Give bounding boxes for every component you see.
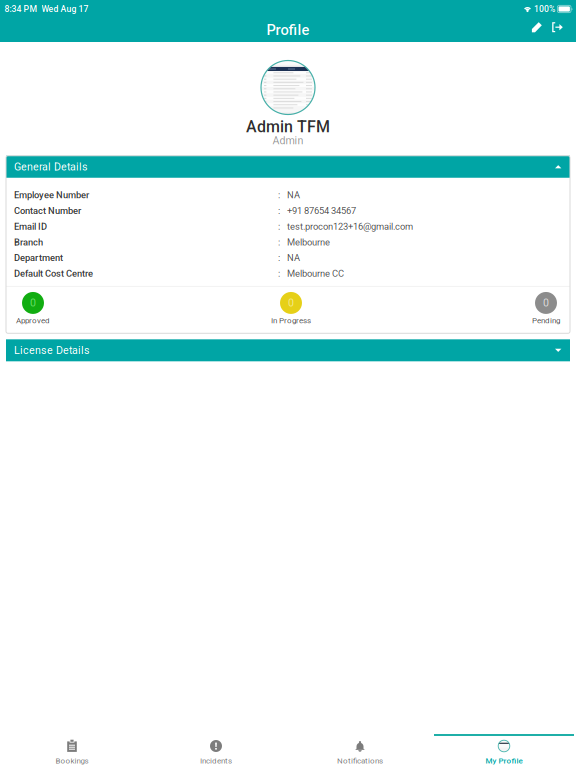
staticText: : [278, 268, 280, 279]
staticText: Notifications [337, 756, 383, 765]
staticText: NA [287, 252, 300, 263]
staticText: 100% [534, 4, 555, 14]
staticText: Melbourne [287, 237, 330, 248]
staticText: Default Cost Centre [14, 268, 93, 279]
staticText: : [278, 190, 280, 200]
staticText: Contact Number [14, 205, 81, 216]
staticText: In Progress [271, 316, 311, 325]
staticText: Branch [14, 237, 43, 248]
staticText: 8:34 PM [4, 4, 37, 14]
staticText: Admin TFM [246, 117, 330, 136]
staticText: : [278, 237, 280, 248]
button[interactable]: Bookings [0, 734, 144, 768]
button[interactable]: License Details [6, 339, 570, 361]
button[interactable]: Notifications [288, 734, 432, 768]
staticText: Incidents [200, 756, 232, 765]
staticText: Wed Aug 17 [41, 4, 88, 14]
button[interactable]: Log out [552, 22, 563, 33]
button[interactable]: General Details [6, 156, 570, 178]
staticText: Approved [16, 316, 50, 325]
staticText: : [278, 205, 280, 216]
staticText: : [278, 252, 280, 263]
staticText: 0 [543, 297, 549, 309]
staticText: test.procon123+16@gmail.com [287, 221, 413, 232]
button[interactable]: My Profile [432, 734, 576, 768]
staticText: Email ID [14, 221, 47, 232]
staticText: Admin [272, 134, 303, 147]
button[interactable]: Edit profile [531, 22, 542, 33]
staticText: NA [287, 190, 300, 200]
staticText: 0 [288, 297, 294, 309]
button[interactable]: Incidents [144, 734, 288, 768]
staticText: Melbourne CC [287, 268, 344, 279]
staticText: : [278, 221, 280, 232]
staticText: 0 [30, 297, 36, 309]
staticText: Pending [532, 316, 560, 325]
staticText: General Details [14, 160, 88, 173]
staticText: +91 87654 34567 [287, 205, 356, 216]
staticText: My Profile [485, 756, 522, 765]
staticText: Department [14, 252, 63, 263]
staticText: Profile [266, 21, 309, 39]
staticText: Bookings [55, 756, 88, 765]
staticText: License Details [14, 344, 90, 357]
staticText: Employee Number [14, 190, 89, 200]
